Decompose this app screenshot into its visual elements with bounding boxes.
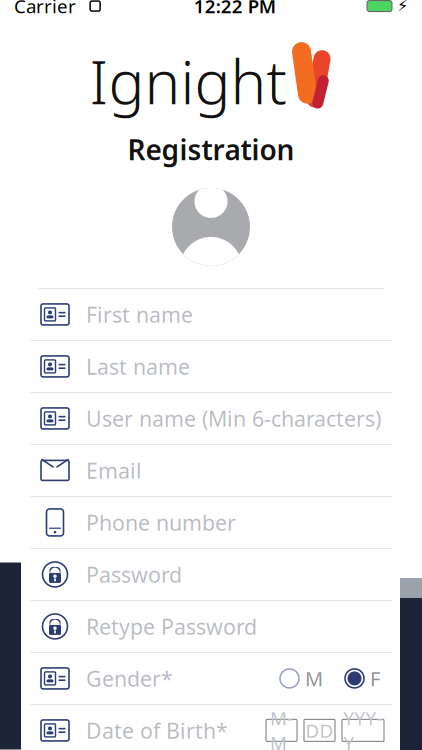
staticText: Date of Birth*: [86, 716, 228, 745]
staticText: Email: [86, 456, 142, 485]
button[interactable]: F: [341, 659, 384, 698]
staticText: ⚡︎: [392, 0, 408, 15]
staticText: Retype Password: [86, 612, 257, 641]
button[interactable]: Password: [0, 549, 422, 601]
staticText: MM: [270, 706, 293, 750]
button[interactable]: Email: [0, 445, 422, 497]
staticText: Phone number: [86, 508, 236, 537]
button[interactable]: First name: [0, 289, 422, 341]
button[interactable]: MM: [266, 719, 297, 741]
staticText: YYYY: [343, 706, 382, 750]
staticText: F: [370, 665, 380, 692]
staticText: Registration: [127, 131, 294, 168]
button[interactable]: User name (Min 6-characters): [0, 393, 422, 445]
staticText: 12:22 PM: [194, 0, 276, 18]
button[interactable]: YYYY: [342, 719, 384, 741]
staticText: User name (Min 6-characters): [86, 404, 381, 433]
button[interactable]: Gender*: [0, 653, 422, 705]
staticText: First name: [86, 300, 193, 329]
staticText: DD: [305, 718, 333, 743]
button[interactable]: Last name: [0, 341, 422, 393]
button[interactable]: M: [276, 659, 327, 698]
button[interactable]: Retype Password: [0, 601, 422, 653]
staticText: Password: [86, 560, 182, 589]
button[interactable]: Date of Birth*: [0, 705, 422, 750]
staticText: Carrier: [14, 0, 76, 18]
staticText: Gender*: [86, 664, 173, 693]
button[interactable]: DD: [304, 719, 335, 741]
staticText: M: [305, 665, 323, 692]
button[interactable]: Phone number: [0, 497, 422, 549]
staticText: Ignight: [89, 41, 286, 121]
staticText: Last name: [86, 352, 190, 381]
